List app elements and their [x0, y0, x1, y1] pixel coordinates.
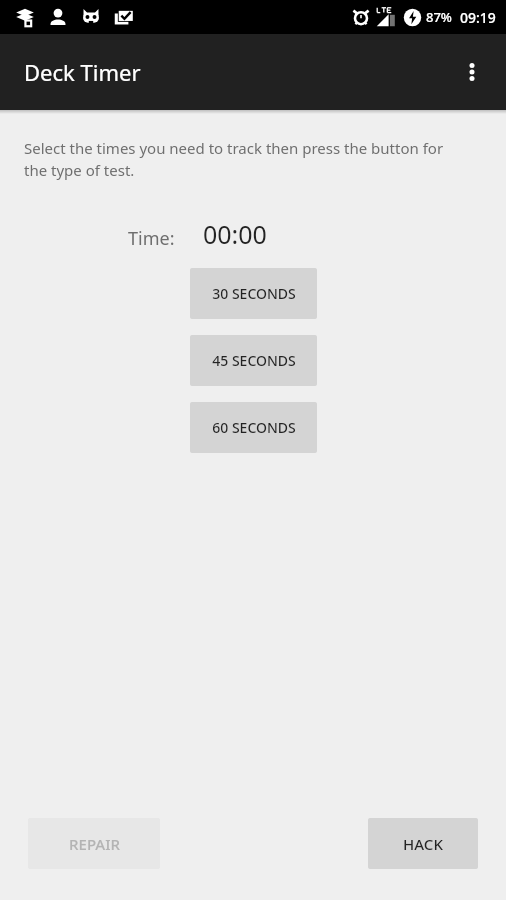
- staticText: REPAIR: [69, 834, 120, 854]
- button[interactable]: REPAIR: [28, 818, 160, 869]
- staticText: Select the times you need to track then …: [24, 138, 466, 181]
- staticText: 87%: [426, 8, 452, 26]
- staticText: Time:: [128, 226, 175, 251]
- staticText: 09:19: [460, 8, 496, 27]
- button[interactable]: 45 SECONDS: [190, 335, 317, 386]
- button[interactable]: 60 SECONDS: [190, 402, 317, 453]
- button[interactable]: More options: [450, 50, 494, 94]
- staticText: 30 SECONDS: [212, 284, 296, 303]
- staticText: Deck Timer: [24, 57, 141, 87]
- staticText: HACK: [403, 834, 443, 854]
- button[interactable]: 30 SECONDS: [190, 268, 317, 319]
- staticText: 60 SECONDS: [212, 418, 296, 437]
- staticText: 45 SECONDS: [212, 351, 296, 370]
- staticText: 00:00: [203, 217, 267, 251]
- button[interactable]: HACK: [368, 818, 478, 869]
